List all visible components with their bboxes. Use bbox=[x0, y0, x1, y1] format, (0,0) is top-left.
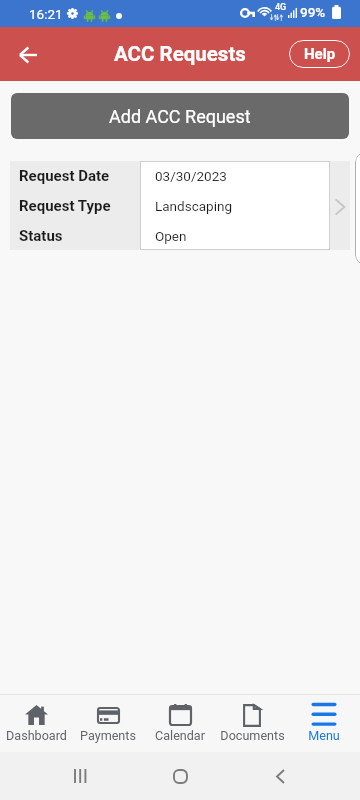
button[interactable]: Recent apps bbox=[60, 756, 100, 796]
staticText: ACC Requests bbox=[114, 42, 246, 66]
button[interactable]: Help bbox=[289, 40, 350, 68]
staticText: 4G bbox=[275, 2, 287, 13]
button[interactable]: Request Date bbox=[10, 161, 350, 250]
staticText: 03/30/2023 bbox=[155, 168, 227, 184]
staticText: Help bbox=[304, 45, 336, 63]
button[interactable]: Payments bbox=[72, 695, 144, 752]
staticText: Calendar bbox=[155, 728, 205, 743]
button[interactable]: Back bbox=[260, 756, 300, 796]
button[interactable]: Documents bbox=[216, 695, 288, 752]
button[interactable]: Menu bbox=[288, 695, 360, 752]
staticText: Payments bbox=[80, 728, 136, 743]
staticText: Add ACC Request bbox=[109, 106, 251, 127]
staticText: Open bbox=[155, 228, 187, 244]
staticText: Status bbox=[19, 227, 63, 245]
staticText: 16:21 bbox=[29, 6, 63, 22]
staticText: Landscaping bbox=[155, 198, 232, 214]
staticText: Request Type bbox=[19, 197, 111, 215]
staticText: Request Date bbox=[19, 167, 110, 185]
button[interactable]: Add ACC Request bbox=[11, 93, 349, 139]
staticText: Documents bbox=[220, 728, 285, 743]
button[interactable]: Home bbox=[160, 756, 200, 796]
button[interactable]: Calendar bbox=[144, 695, 216, 752]
button[interactable]: Back bbox=[9, 36, 46, 73]
staticText: 99% bbox=[300, 4, 326, 20]
button[interactable]: Dashboard bbox=[0, 695, 72, 752]
staticText: Menu bbox=[308, 728, 340, 743]
staticText: Dashboard bbox=[6, 728, 67, 743]
